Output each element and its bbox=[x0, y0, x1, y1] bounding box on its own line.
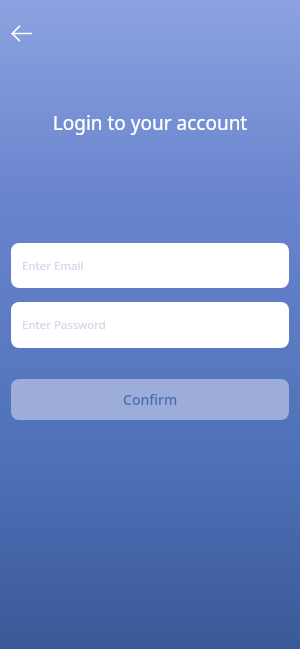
button[interactable]: Confirm bbox=[11, 379, 289, 420]
staticText: Confirm bbox=[123, 390, 178, 409]
staticText: Enter Email bbox=[22, 258, 84, 274]
staticText: Enter Password bbox=[22, 317, 106, 333]
button[interactable]: Enter Email bbox=[11, 243, 289, 288]
button[interactable]: Back bbox=[6, 18, 37, 49]
staticText: Login to your account bbox=[0, 110, 300, 136]
button[interactable]: Enter Password bbox=[11, 302, 289, 348]
